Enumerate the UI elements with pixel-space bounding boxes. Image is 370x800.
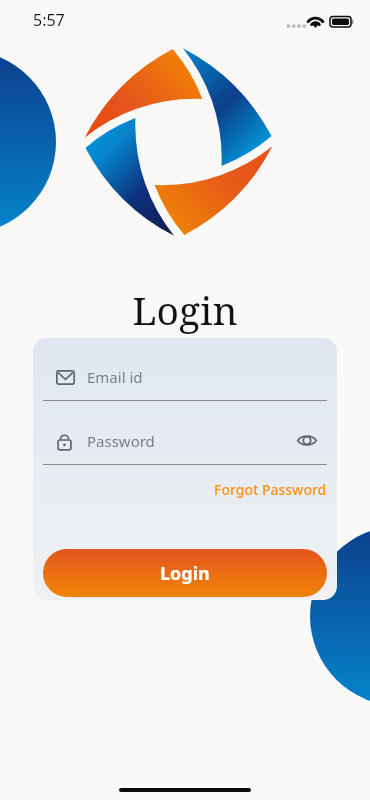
button[interactable]: Forgot Password — [200, 476, 327, 502]
staticText: Login — [160, 561, 210, 586]
button[interactable]: Password — [43, 418, 327, 464]
staticText: 5:57 — [33, 9, 65, 31]
button[interactable]: Email id — [43, 354, 327, 400]
staticText: Password — [87, 431, 155, 451]
button[interactable]: Show password — [292, 427, 322, 453]
staticText: Forgot Password — [214, 480, 327, 499]
staticText: Login — [0, 283, 370, 336]
staticText: Email id — [87, 367, 143, 387]
button[interactable]: Login — [43, 549, 327, 597]
